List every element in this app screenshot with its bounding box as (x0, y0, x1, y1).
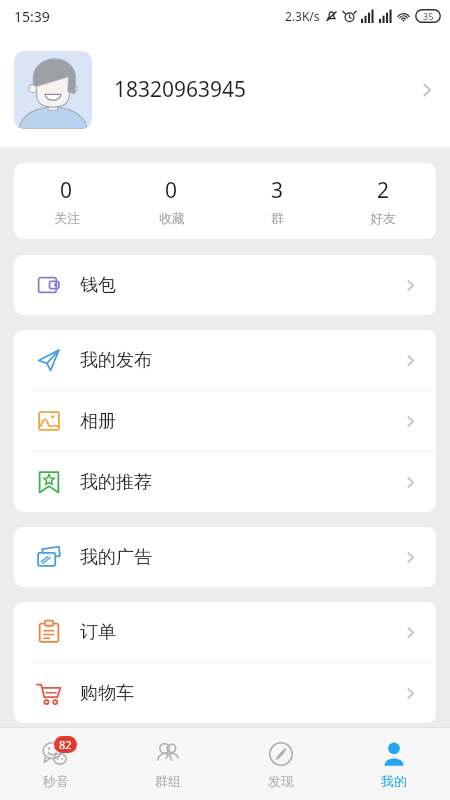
button[interactable]: 发现 (224, 728, 337, 800)
staticText: 2.3K/s (285, 8, 320, 24)
staticText: 群组 (155, 773, 181, 789)
staticText: 钱包 (80, 274, 116, 297)
button[interactable]: 群组 (112, 728, 224, 800)
staticText: 15:39 (14, 7, 50, 26)
staticText: 35 (423, 10, 434, 22)
button[interactable]: My recommendations (14, 452, 436, 512)
button[interactable]: Wallet (14, 255, 436, 315)
staticText: 0 (60, 176, 73, 205)
staticText: 18320963945 (114, 75, 247, 104)
staticText: 关注 (54, 210, 80, 226)
staticText: 好友 (370, 210, 396, 226)
button[interactable]: Shopping cart (14, 663, 436, 723)
button[interactable]: Album (14, 391, 436, 451)
staticText: 我的推荐 (80, 471, 152, 494)
staticText: 我的广告 (80, 546, 152, 569)
button[interactable]: 我的 (337, 728, 450, 800)
staticText: 我的 (381, 773, 407, 789)
staticText: 订单 (80, 621, 116, 644)
button[interactable]: 3 (224, 163, 330, 239)
staticText: 秒音 (43, 773, 69, 789)
button[interactable]: 18320963945 (0, 32, 450, 147)
staticText: 82 (59, 737, 72, 752)
staticText: 相册 (80, 410, 116, 433)
button[interactable]: My ads (14, 527, 436, 587)
button[interactable]: Orders (14, 602, 436, 662)
button[interactable]: 82 (0, 728, 112, 800)
staticText: 3 (271, 176, 284, 205)
button[interactable]: My posts (14, 330, 436, 390)
staticText: 我的发布 (80, 349, 152, 372)
staticText: 群 (271, 210, 284, 226)
staticText: 收藏 (159, 210, 185, 226)
staticText: 购物车 (80, 682, 134, 705)
staticText: 发现 (268, 773, 294, 789)
staticText: 2 (377, 176, 390, 205)
staticText: 0 (165, 176, 178, 205)
button[interactable]: 0 (119, 163, 224, 239)
button[interactable]: 2 (330, 163, 436, 239)
button[interactable]: 0 (14, 163, 119, 239)
